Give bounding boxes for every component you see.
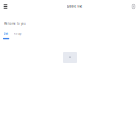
button[interactable]: Recap [14, 32, 22, 35]
button[interactable]: Account [129, 1, 138, 11]
staticText: Recap [14, 32, 22, 35]
button[interactable]: Menu [1, 1, 10, 11]
staticText: cubble live [66, 5, 82, 8]
button[interactable]: Live [3, 32, 9, 39]
staticText: Live [4, 32, 9, 35]
staticText: Welcome to you [4, 22, 26, 25]
button[interactable]: Open stream [63, 52, 77, 63]
